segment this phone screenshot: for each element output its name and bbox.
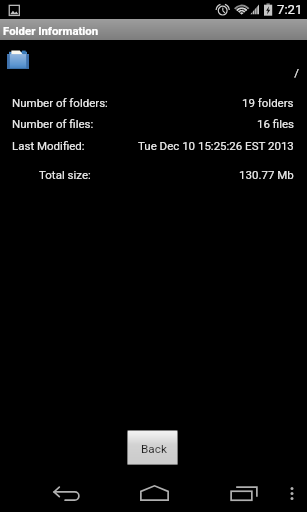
staticText: 130.77 Mb bbox=[239, 168, 294, 181]
button[interactable]: Back bbox=[128, 431, 177, 464]
staticText: 16 files bbox=[257, 117, 294, 130]
staticText: Total size: bbox=[39, 168, 91, 181]
staticText: 19 folders bbox=[242, 96, 294, 109]
staticText: Tue Dec 10 15:25:26 EST 2013 bbox=[138, 139, 294, 152]
staticText: / bbox=[0, 66, 299, 79]
button[interactable]: Recent apps bbox=[220, 472, 268, 512]
staticText: Number of files: bbox=[12, 117, 94, 130]
staticText: 7:21 bbox=[277, 2, 303, 17]
button[interactable]: Home bbox=[130, 472, 178, 512]
staticText: Number of folders: bbox=[12, 96, 108, 109]
button[interactable]: Back bbox=[42, 472, 90, 512]
staticText: Back bbox=[141, 442, 167, 456]
button[interactable]: More options bbox=[280, 472, 303, 512]
staticText: Last Modified: bbox=[12, 139, 85, 152]
staticText: Folder Information bbox=[3, 24, 99, 37]
